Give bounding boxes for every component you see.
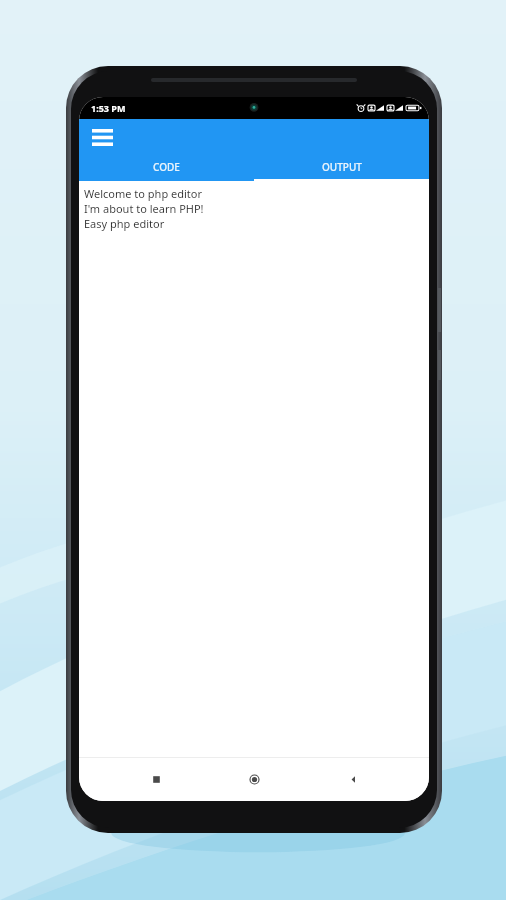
staticText: I'm about to learn PHP! [84,201,204,216]
button[interactable]: CODE [79,155,254,181]
button[interactable]: Open navigation menu [87,122,117,152]
button[interactable]: OUTPUT [254,155,429,181]
staticText: Welcome to php editor [84,186,202,201]
button[interactable]: Home [232,757,276,801]
staticText: Easy php editor [84,216,165,231]
staticText: OUTPUT [322,160,362,174]
staticText: CODE [153,160,180,174]
staticText: 1:53 PM [91,102,126,114]
button[interactable]: Back [331,757,375,801]
button[interactable]: Recent apps [134,757,178,801]
